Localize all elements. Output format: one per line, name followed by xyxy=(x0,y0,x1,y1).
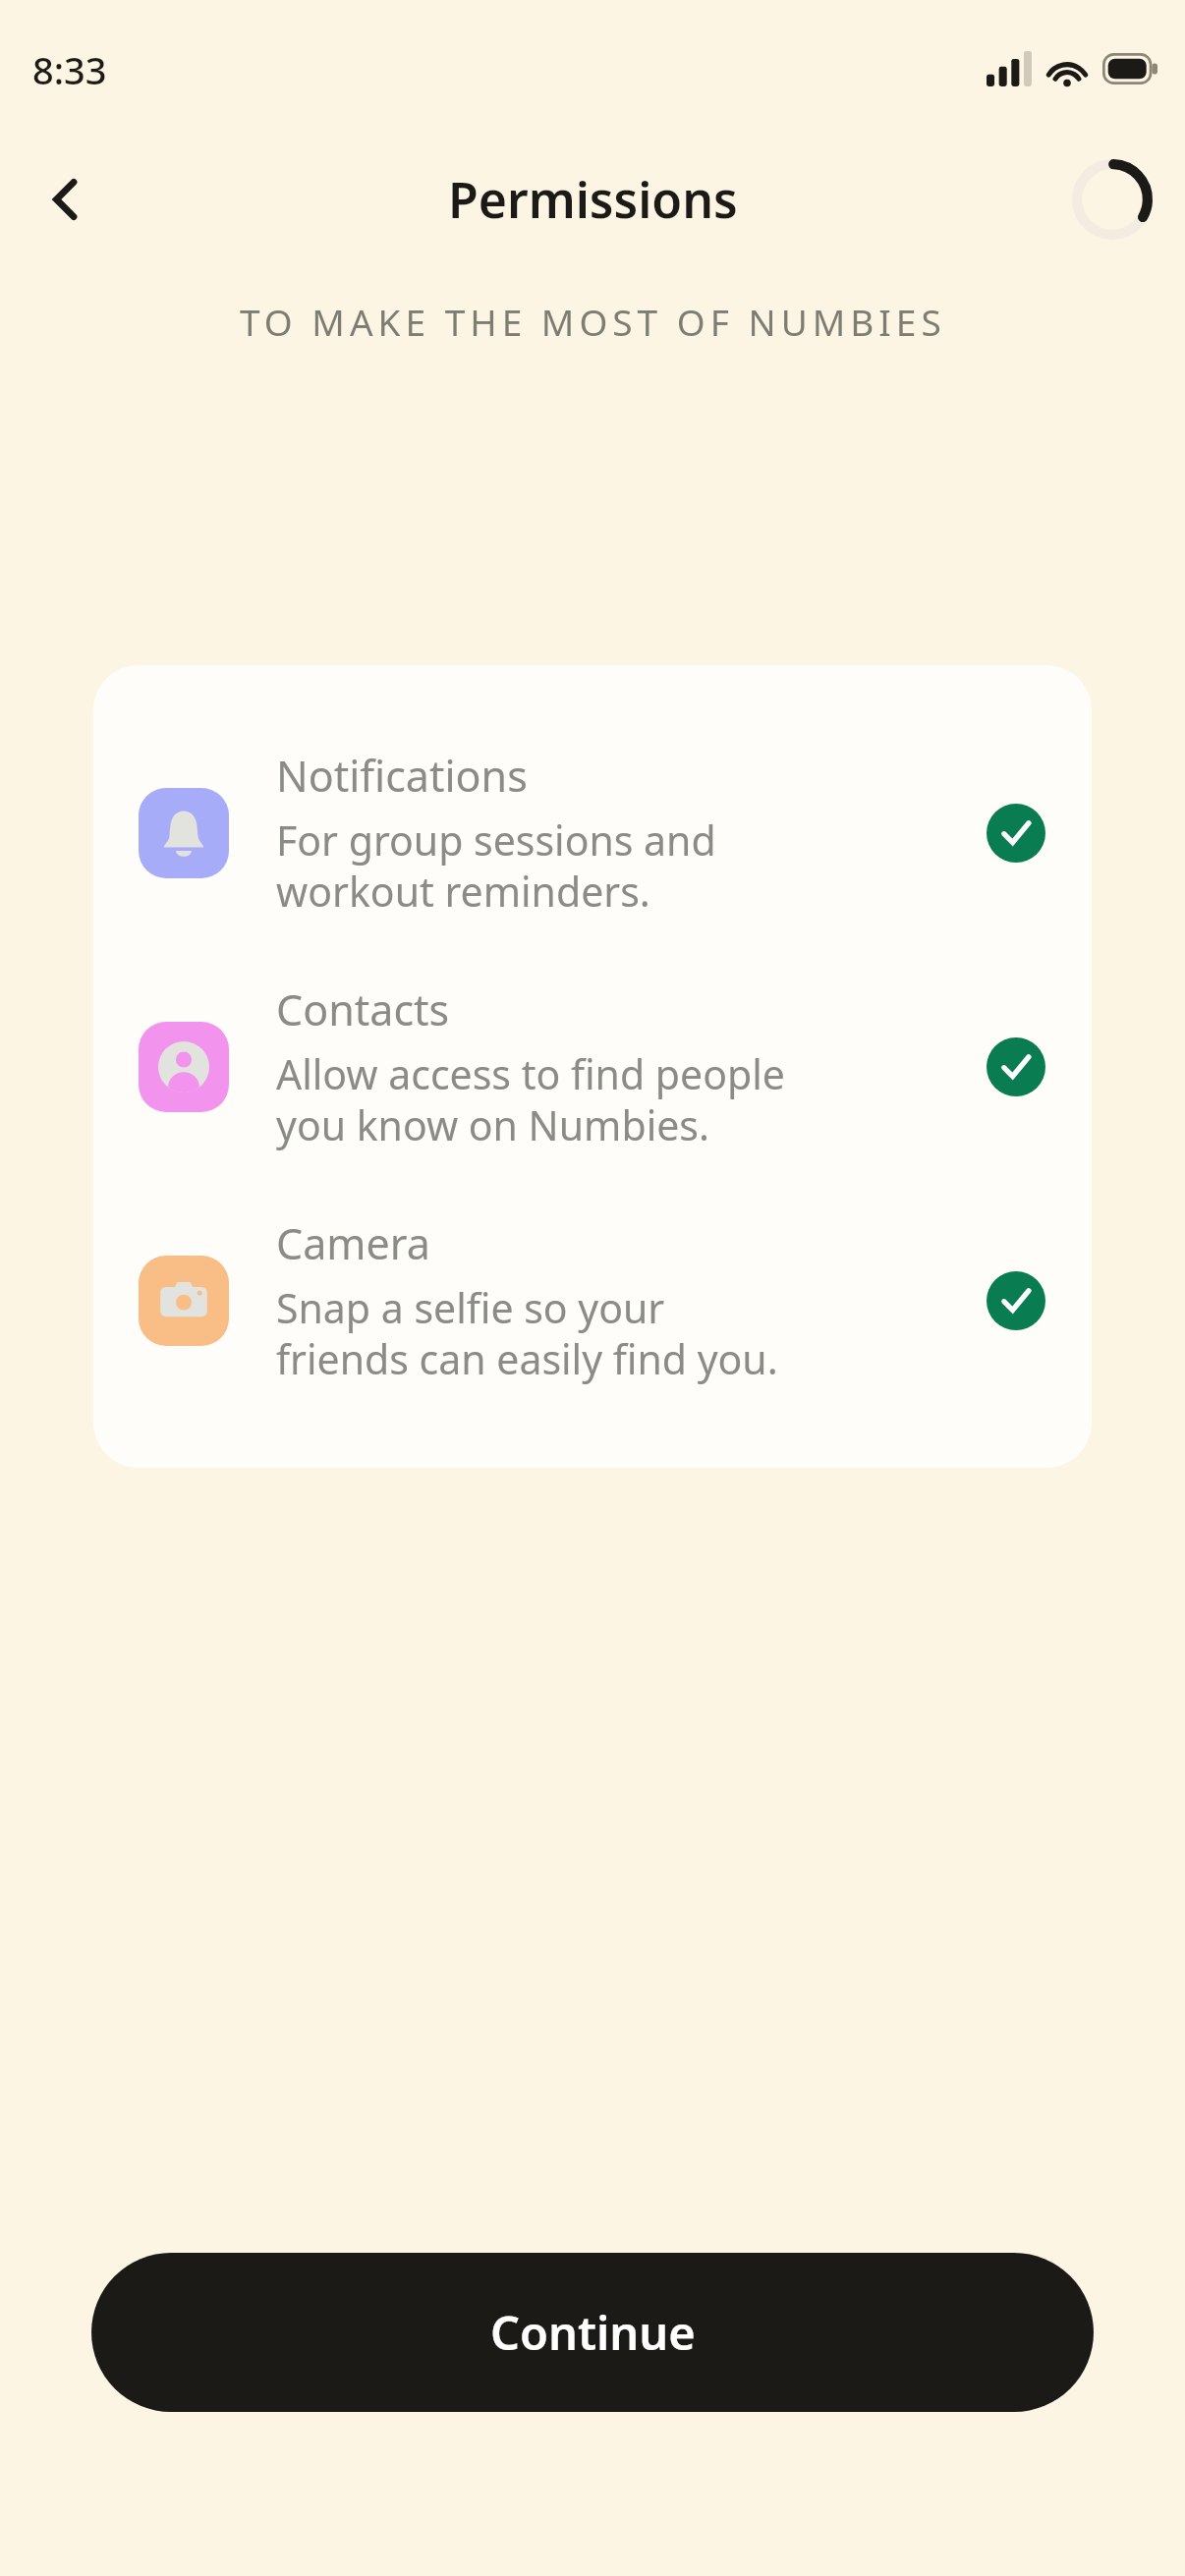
staticText: Notifications xyxy=(276,747,528,805)
button[interactable]: Notifications xyxy=(93,747,1092,919)
staticText: Snap a selfie so your friends can easily… xyxy=(276,1280,778,1386)
other: Granted xyxy=(987,804,1045,863)
staticText: Contacts xyxy=(276,980,450,1038)
staticText: Allow access to find people you know on … xyxy=(276,1046,785,1152)
other: Granted xyxy=(987,1271,1045,1330)
other: Loading xyxy=(1067,154,1157,245)
staticText: Camera xyxy=(276,1214,430,1272)
button[interactable]: Back xyxy=(20,152,114,247)
button[interactable]: Camera xyxy=(93,1214,1092,1386)
staticText: For group sessions and workout reminders… xyxy=(276,812,716,919)
staticText: TO MAKE THE MOST OF NUMBIES xyxy=(240,297,946,346)
staticText: 8:33 xyxy=(32,44,107,95)
other: Granted xyxy=(987,1037,1045,1096)
button[interactable]: Continue xyxy=(91,2253,1094,2412)
button[interactable]: Contacts xyxy=(93,980,1092,1152)
staticText: Continue xyxy=(490,2301,696,2364)
staticText: Permissions xyxy=(448,166,738,233)
